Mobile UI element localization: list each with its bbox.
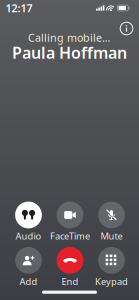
staticText: Keypad [95, 275, 128, 287]
staticText: Paula Hoffman [12, 42, 127, 63]
button[interactable]: Keypad [91, 247, 132, 287]
button[interactable]: FaceTime [49, 202, 90, 242]
staticText: 12:17 [5, 1, 32, 15]
staticText: End [61, 275, 78, 287]
staticText: Calling mobile… [28, 30, 110, 45]
staticText: Mute [100, 230, 122, 242]
button[interactable]: Mute [91, 202, 132, 242]
button[interactable]: Audio [8, 202, 49, 242]
staticText: Add [19, 275, 37, 287]
button[interactable]: Add [8, 247, 49, 287]
button[interactable]: End [49, 247, 90, 287]
staticText: FaceTime [50, 230, 90, 242]
button[interactable]: Call details [115, 17, 137, 39]
staticText: Audio [15, 230, 41, 242]
